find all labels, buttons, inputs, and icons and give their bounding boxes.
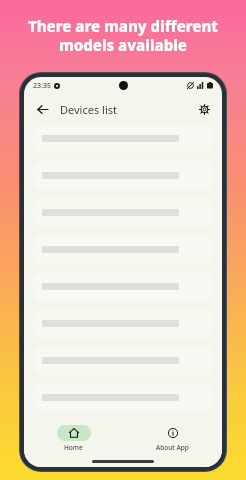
staticText: About App [156, 443, 189, 452]
button[interactable]: About App [123, 420, 222, 456]
button[interactable]: Back [32, 99, 52, 119]
button[interactable] [33, 346, 213, 375]
staticText: Home [64, 443, 83, 452]
staticText: There are many different models availabl… [8, 16, 238, 55]
button[interactable] [33, 198, 213, 227]
button[interactable]: Home [24, 420, 123, 456]
button[interactable] [33, 383, 213, 412]
button[interactable] [33, 272, 213, 301]
button[interactable] [33, 124, 213, 153]
button[interactable] [33, 161, 213, 190]
staticText: Devices list [60, 102, 117, 117]
button[interactable] [33, 235, 213, 264]
staticText: 23:35 [33, 81, 51, 91]
button[interactable]: Settings [194, 99, 214, 119]
button[interactable] [33, 309, 213, 338]
